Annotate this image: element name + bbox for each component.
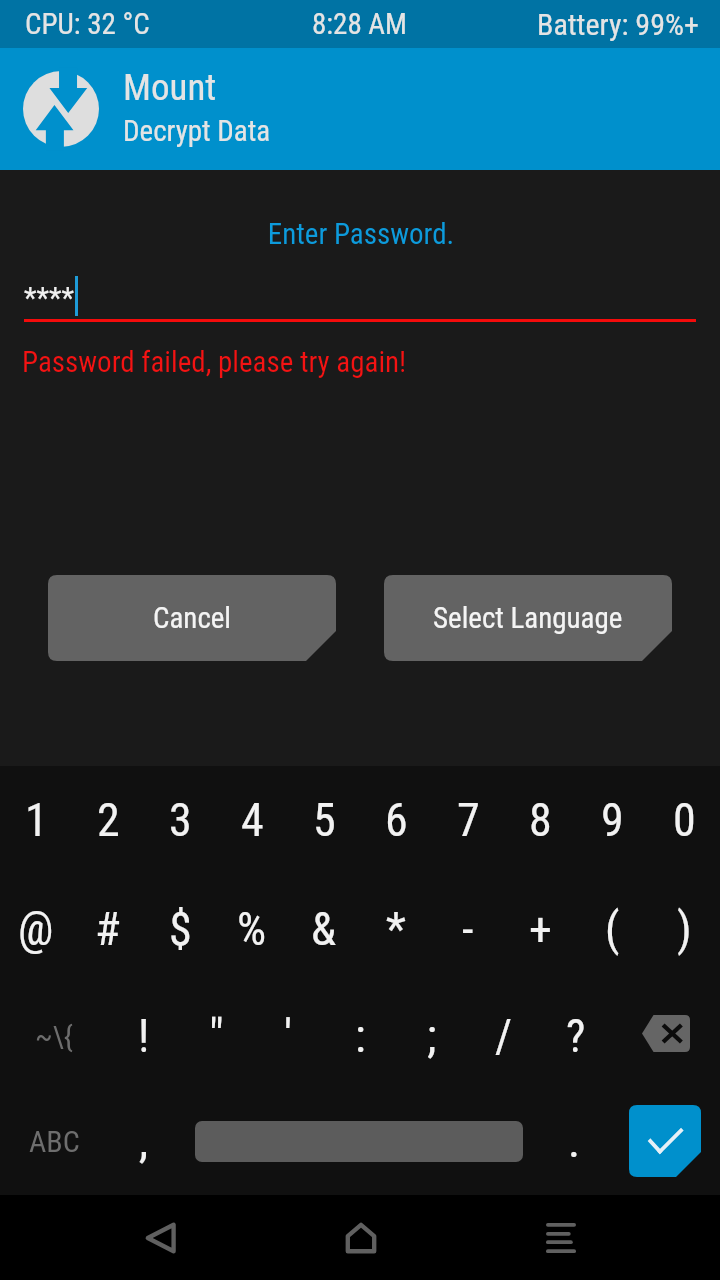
staticText: 1 xyxy=(25,793,48,847)
staticText: + xyxy=(529,902,552,956)
button[interactable]: Select Language xyxy=(384,575,672,661)
staticText: 8:28 AM xyxy=(312,7,408,41)
staticText: Decrypt Data xyxy=(123,114,271,148)
staticText: Mount xyxy=(123,66,217,109)
button[interactable]: ' xyxy=(252,983,324,1089)
button[interactable]: 1 xyxy=(0,767,72,873)
button[interactable]: 3 xyxy=(144,767,216,873)
button[interactable]: Enter xyxy=(610,1088,720,1194)
staticText: " xyxy=(209,1009,224,1063)
staticText: ' xyxy=(284,1009,293,1063)
staticText: & xyxy=(311,902,337,956)
button[interactable]: Cancel xyxy=(48,575,336,661)
button[interactable]: 5 xyxy=(288,767,360,873)
staticText: 3 xyxy=(169,793,192,847)
button[interactable]: Backspace xyxy=(612,983,720,1089)
button[interactable]: Home xyxy=(300,1195,420,1279)
button[interactable]: Password field xyxy=(24,271,696,322)
button[interactable]: & xyxy=(288,876,360,982)
staticText: ( xyxy=(605,902,620,956)
staticText: - xyxy=(462,902,474,956)
staticText: Password failed, please try again! xyxy=(22,345,407,379)
staticText: 2 xyxy=(97,793,120,847)
staticText: * xyxy=(386,902,406,956)
staticText: ? xyxy=(566,1009,586,1063)
staticText: Battery: 99%+ xyxy=(537,7,699,42)
staticText: ) xyxy=(677,902,692,956)
staticText: 8 xyxy=(529,793,552,847)
button[interactable]: Back xyxy=(100,1195,220,1279)
button[interactable]: ABC xyxy=(0,1088,108,1194)
staticText: % xyxy=(237,902,267,956)
button[interactable]: 6 xyxy=(360,767,432,873)
staticText: ; xyxy=(427,1009,437,1063)
button[interactable]: ? xyxy=(540,983,612,1089)
button[interactable]: / xyxy=(468,983,540,1089)
button[interactable]: ) xyxy=(648,876,720,982)
staticText: **** xyxy=(24,281,74,315)
button[interactable]: ; xyxy=(396,983,468,1089)
button[interactable]: + xyxy=(504,876,576,982)
button[interactable]: . xyxy=(538,1088,610,1194)
staticText: # xyxy=(95,902,121,956)
staticText: Cancel xyxy=(153,601,232,635)
staticText: 6 xyxy=(385,793,408,847)
button[interactable]: @ xyxy=(0,876,72,982)
button[interactable]: , xyxy=(108,1088,180,1194)
button[interactable]: 4 xyxy=(216,767,288,873)
staticText: ABC xyxy=(29,1124,80,1159)
button[interactable]: - xyxy=(432,876,504,982)
staticText: 4 xyxy=(241,793,264,847)
button[interactable]: 2 xyxy=(72,767,144,873)
button[interactable]: " xyxy=(180,983,252,1089)
button[interactable]: # xyxy=(72,876,144,982)
staticText: Enter Password. xyxy=(1,217,720,251)
button[interactable]: Space xyxy=(195,1121,523,1162)
button[interactable]: ( xyxy=(576,876,648,982)
button[interactable]: : xyxy=(324,983,396,1089)
staticText: @ xyxy=(18,902,54,956)
staticText: / xyxy=(495,1009,513,1063)
staticText: $ xyxy=(169,902,192,956)
staticText: 9 xyxy=(601,793,624,847)
staticText: . xyxy=(568,1114,581,1168)
button[interactable]: 8 xyxy=(504,767,576,873)
staticText: ! xyxy=(138,1009,150,1063)
staticText: : xyxy=(355,1009,366,1063)
staticText: CPU: 32 °C xyxy=(25,7,150,41)
button[interactable]: % xyxy=(216,876,288,982)
staticText: Select Language xyxy=(433,601,623,635)
staticText: 7 xyxy=(457,793,480,847)
button[interactable]: $ xyxy=(144,876,216,982)
button[interactable]: * xyxy=(360,876,432,982)
staticText: 0 xyxy=(673,793,696,847)
button[interactable]: ! xyxy=(108,983,180,1089)
staticText: , xyxy=(139,1114,149,1168)
button[interactable]: 0 xyxy=(648,767,720,873)
button[interactable]: 7 xyxy=(432,767,504,873)
button[interactable]: 9 xyxy=(576,767,648,873)
staticText: ~\{ xyxy=(35,1019,73,1054)
button[interactable]: ~\{ xyxy=(0,983,108,1089)
button[interactable]: Menu xyxy=(500,1195,620,1279)
staticText: 5 xyxy=(313,793,336,847)
